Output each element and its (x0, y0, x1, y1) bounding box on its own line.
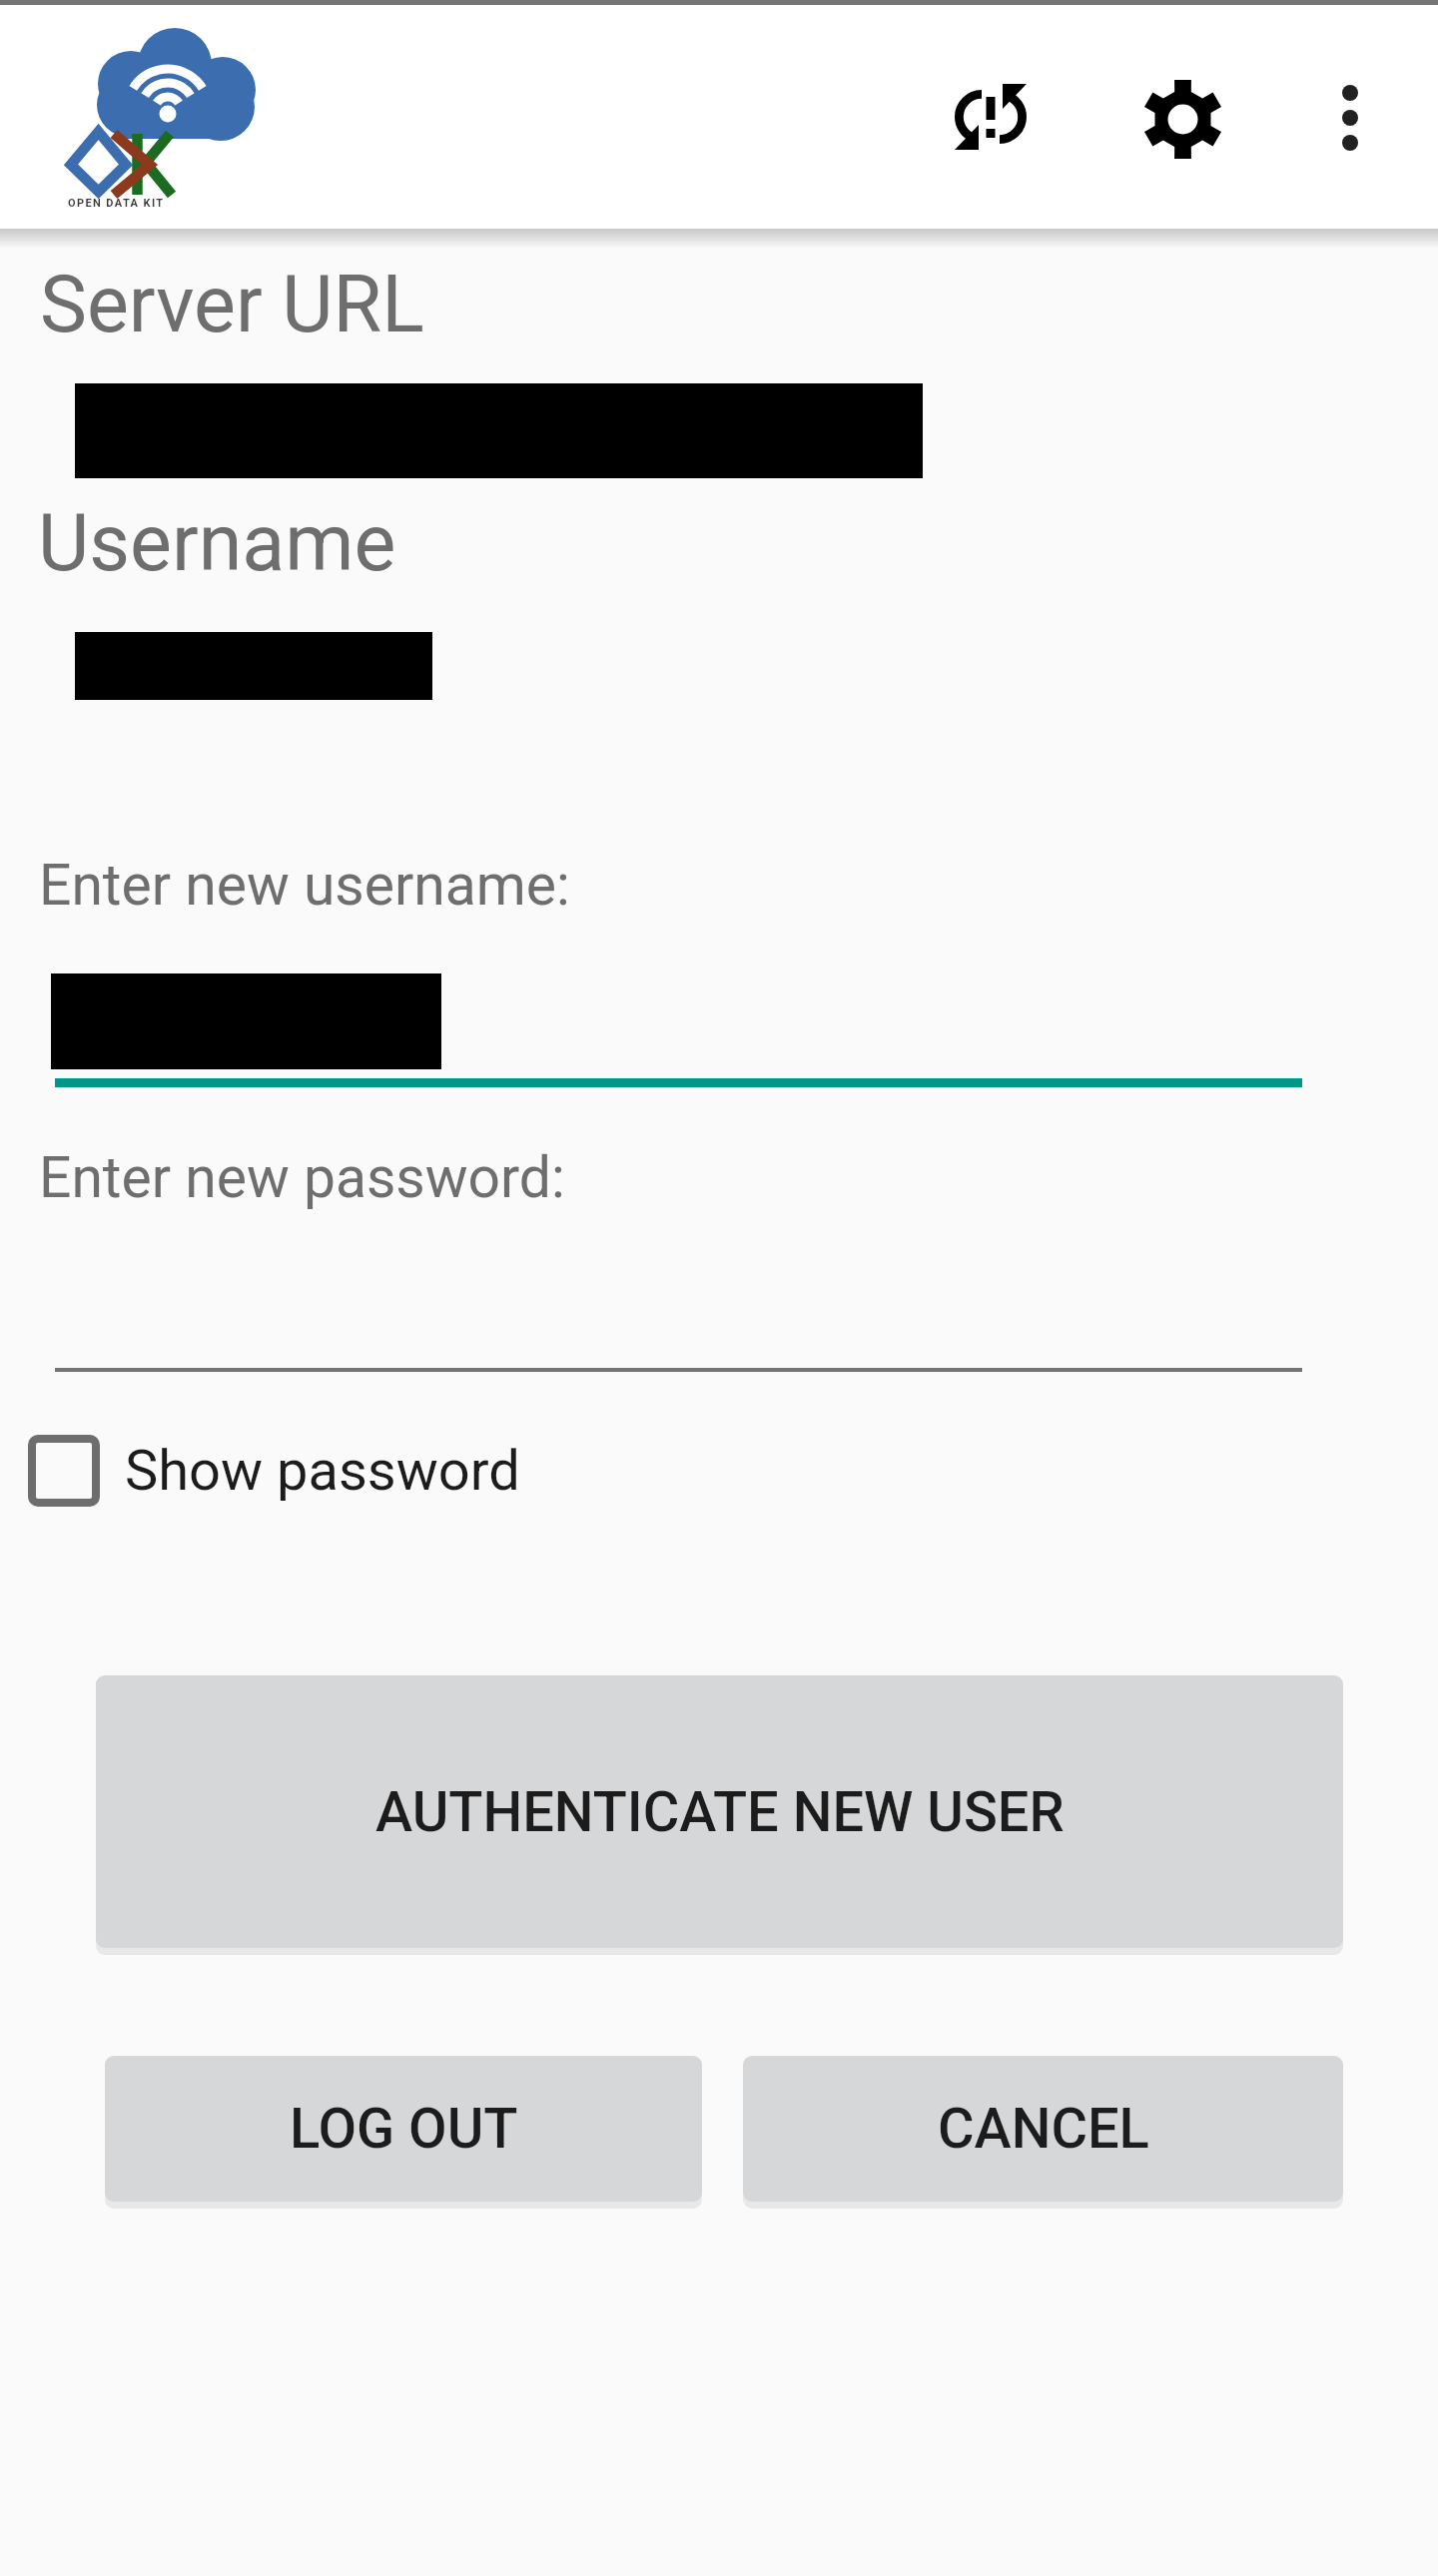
button[interactable]: CANCEL (743, 2056, 1343, 2202)
button[interactable]: AUTHENTICATE NEW USER (96, 1675, 1343, 1948)
button[interactable]: More options (1278, 46, 1422, 190)
staticText: LOG OUT (290, 2096, 518, 2162)
button[interactable]: Open Data Kit home (55, 13, 269, 219)
staticText: OPEN DATA KIT (68, 197, 165, 210)
button[interactable]: Sync problem (919, 43, 1063, 191)
staticText: Enter new password: (39, 1144, 565, 1211)
staticText: Server URL (40, 259, 424, 351)
staticText: Show password (125, 1438, 520, 1504)
staticText: Username (38, 497, 396, 590)
button[interactable]: LOG OUT (105, 2056, 702, 2202)
staticText: Enter new username: (39, 852, 570, 919)
button[interactable]: Show password (17, 1424, 520, 1518)
staticText: CANCEL (938, 2096, 1149, 2162)
button[interactable]: Settings (1110, 47, 1254, 191)
staticText: AUTHENTICATE NEW USER (375, 1779, 1065, 1845)
